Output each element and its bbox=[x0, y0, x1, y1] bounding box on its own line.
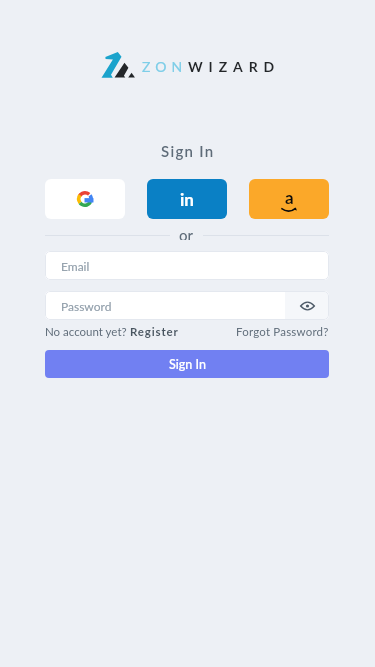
staticText: in bbox=[180, 189, 194, 209]
button[interactable]: Show password bbox=[285, 291, 329, 320]
staticText: WIZARD bbox=[188, 58, 281, 75]
button[interactable]: Forgot Password? bbox=[236, 325, 329, 339]
button[interactable]: Sign in with LinkedIn bbox=[147, 179, 227, 219]
button[interactable]: Email bbox=[45, 251, 329, 280]
button[interactable]: Sign In bbox=[45, 350, 329, 378]
button[interactable]: Password bbox=[45, 291, 285, 320]
staticText: Sign In bbox=[161, 142, 215, 160]
staticText: ZON bbox=[142, 58, 188, 75]
staticText: Register bbox=[130, 325, 179, 339]
staticText: No account yet? bbox=[45, 325, 130, 339]
button[interactable]: Sign in with Amazon bbox=[249, 179, 329, 219]
staticText: a bbox=[285, 187, 294, 207]
button[interactable]: No account yet? bbox=[45, 325, 179, 339]
staticText: Password bbox=[61, 299, 112, 313]
staticText: Sign In bbox=[169, 357, 206, 372]
button[interactable]: Sign in with Google bbox=[45, 179, 125, 219]
staticText: Email bbox=[61, 259, 90, 273]
staticText: or bbox=[179, 226, 194, 240]
